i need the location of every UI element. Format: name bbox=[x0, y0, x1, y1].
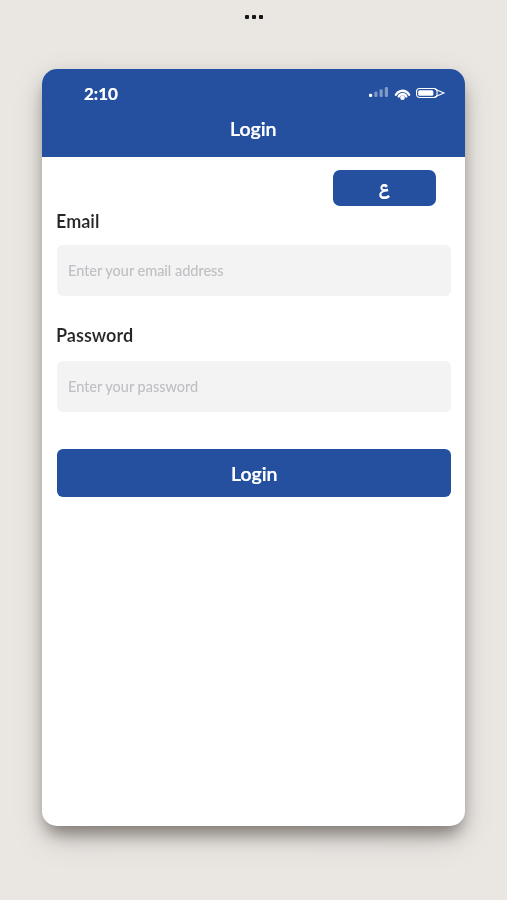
staticText: Enter your password bbox=[68, 378, 199, 395]
staticText: Password bbox=[56, 324, 134, 346]
button[interactable]: Enter your password bbox=[57, 361, 451, 412]
staticText: Login bbox=[231, 462, 278, 485]
staticText: Email bbox=[56, 210, 100, 232]
button[interactable]: Enter your email address bbox=[57, 245, 451, 296]
staticText: 2:10 bbox=[84, 83, 118, 103]
other: Battery bbox=[416, 88, 445, 98]
staticText: Enter your email address bbox=[68, 262, 224, 279]
button[interactable]: ع bbox=[333, 170, 436, 206]
staticText: Login bbox=[230, 117, 277, 140]
button[interactable]: Login bbox=[57, 449, 451, 497]
other: Wi-Fi bbox=[394, 87, 411, 98]
other: Cellular signal bbox=[369, 87, 388, 97]
staticText: ع bbox=[379, 177, 390, 200]
